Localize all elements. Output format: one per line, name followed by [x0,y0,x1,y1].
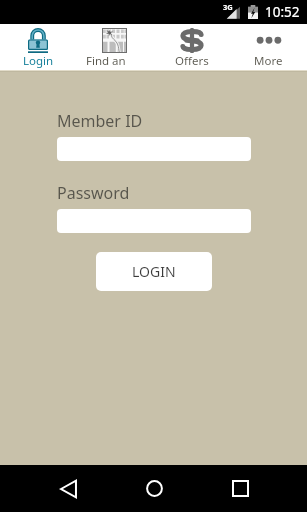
staticText: More [254,53,283,69]
staticText: 3G [223,2,233,12]
staticText: Offers [175,53,209,69]
button[interactable] [57,137,251,161]
button[interactable]: Home [132,465,176,512]
button[interactable]: LOGIN [96,252,212,291]
staticText: Member ID [57,110,143,132]
staticText: LOGIN [132,262,176,281]
staticText: Find an [86,53,126,69]
button[interactable]: More [230,24,307,70]
button[interactable]: Back [46,465,90,512]
button[interactable] [57,209,251,233]
button[interactable]: Find an [76,24,153,70]
button[interactable]: Login [0,24,76,70]
staticText: 10:52 [265,3,300,21]
staticText: Password [57,182,130,204]
button[interactable]: Offers [153,24,230,70]
staticText: Login [23,53,54,69]
button[interactable]: Recent apps [218,465,262,512]
